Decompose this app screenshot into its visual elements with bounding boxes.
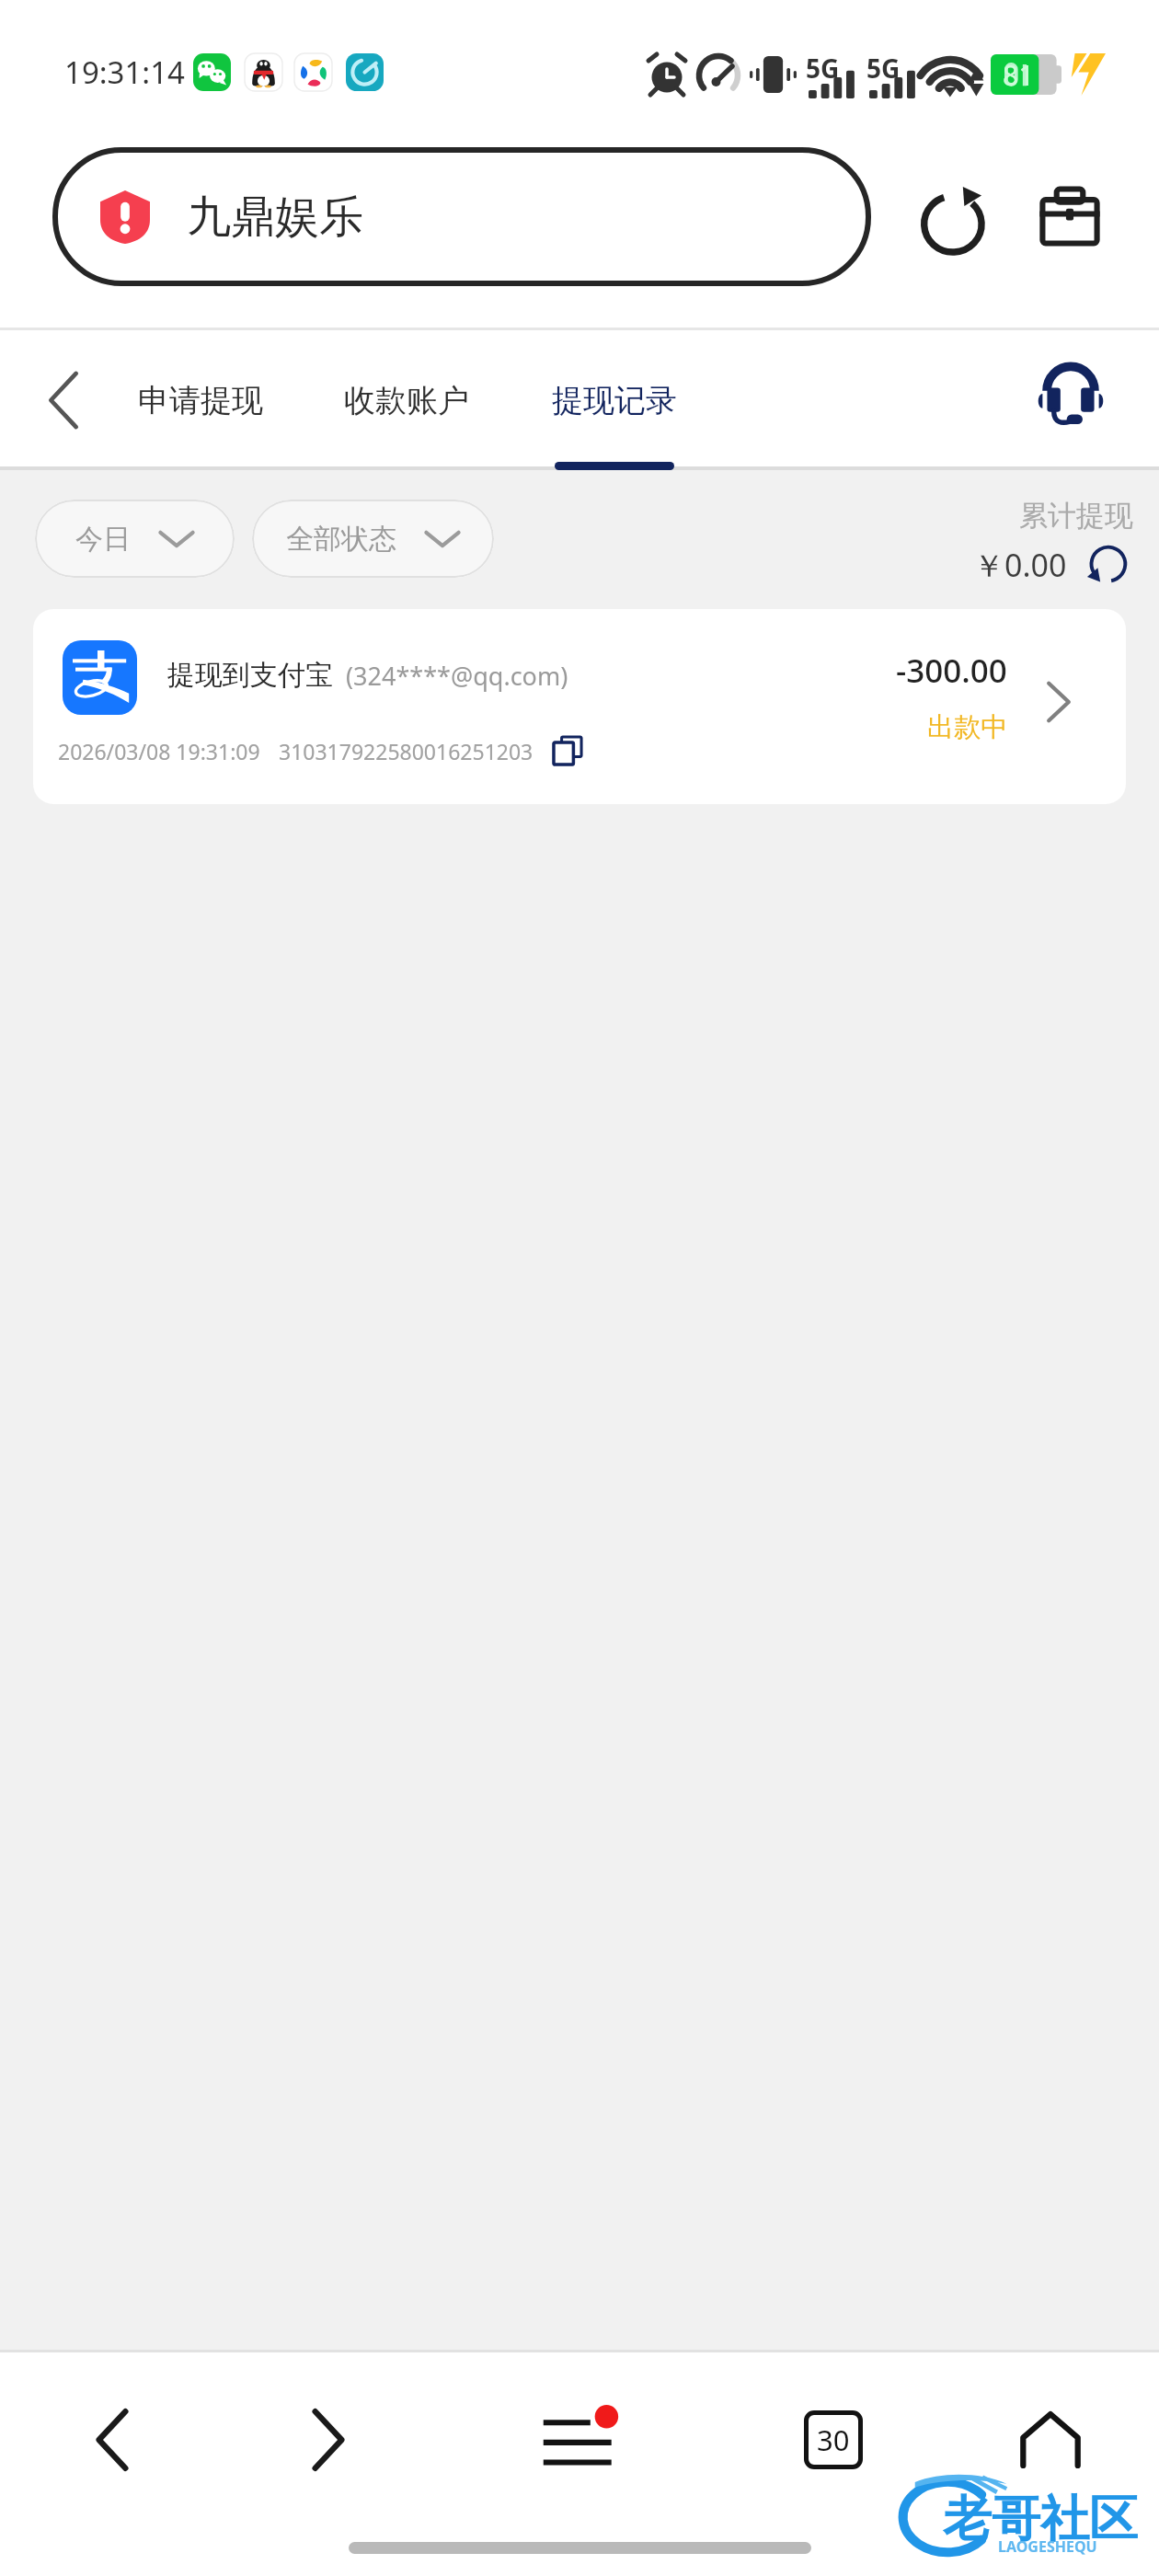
staticText: 累计提现 xyxy=(1019,498,1133,534)
staticText: 今日 xyxy=(75,522,131,557)
button[interactable]: 今日 xyxy=(35,500,235,578)
staticText: 收款账户 xyxy=(344,381,469,420)
staticText: 九鼎娱乐 xyxy=(187,190,363,245)
staticText: 30 xyxy=(817,2421,850,2459)
button[interactable]: Forward xyxy=(269,2380,388,2500)
staticText: 老哥社区 xyxy=(943,2489,1138,2550)
staticText: LAOGESHEQU xyxy=(998,2536,1097,2557)
staticText: 申请提现 xyxy=(138,381,263,420)
staticText: 81 xyxy=(1003,56,1035,94)
staticText: 提现到支付宝 xyxy=(167,658,333,693)
button[interactable]: 申请提现 xyxy=(118,330,283,470)
button[interactable]: Back xyxy=(52,2380,172,2500)
button[interactable]: Copy order number xyxy=(547,730,588,771)
button[interactable]: Menu xyxy=(522,2380,642,2500)
button[interactable]: 收款账户 xyxy=(324,330,489,470)
button[interactable]: Back xyxy=(13,350,114,451)
staticText: 提现记录 xyxy=(552,381,677,420)
button[interactable]: 提现到支付宝 xyxy=(33,609,1126,804)
button[interactable]: Refresh total xyxy=(1082,539,1133,591)
staticText: (324****@qq.com) xyxy=(346,659,568,693)
button[interactable]: Toolbox xyxy=(1016,162,1124,270)
button[interactable]: Tabs xyxy=(774,2380,893,2500)
staticText: ￥0.00 xyxy=(973,544,1067,586)
staticText: 全部状态 xyxy=(286,522,396,557)
staticText: 5G xyxy=(866,51,901,86)
button[interactable]: 全部状态 xyxy=(252,500,494,578)
button[interactable]: Home xyxy=(991,2380,1110,2500)
staticText: 19:31:14 xyxy=(64,52,185,93)
staticText: 出款中 xyxy=(927,710,1007,744)
button[interactable]: 提现记录 xyxy=(532,330,697,470)
button[interactable]: Customer service xyxy=(1016,339,1126,449)
staticText: 5G xyxy=(806,51,840,86)
button[interactable]: 九鼎娱乐 xyxy=(52,147,871,286)
staticText: -300.00 xyxy=(896,649,1007,693)
button[interactable]: Reload xyxy=(901,162,1010,270)
staticText: 310317922580016251203 xyxy=(279,737,534,765)
staticText: 2026/03/08 19:31:09 xyxy=(58,737,260,765)
